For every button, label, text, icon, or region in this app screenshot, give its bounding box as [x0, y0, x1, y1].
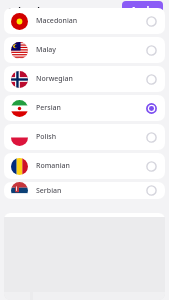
staticText: Select language [8, 4, 80, 16]
staticText: Romanian [36, 161, 146, 171]
button[interactable]: Polish [4, 124, 165, 150]
other: Serbian not selected [146, 185, 157, 196]
other: Macedonian not selected [146, 16, 157, 27]
button[interactable]: Serbian [4, 182, 165, 199]
staticText: Malay [36, 45, 146, 55]
other: Norwegian not selected [146, 74, 157, 85]
staticText: Polish [36, 132, 146, 142]
other: Malay not selected [146, 45, 157, 56]
other: Romanian not selected [146, 161, 157, 172]
button[interactable]: Persian [4, 95, 165, 121]
button[interactable]: Romanian [4, 153, 165, 179]
button[interactable]: Apply [122, 1, 163, 18]
button[interactable]: Malay [4, 37, 165, 63]
staticText: Serbian [36, 186, 146, 196]
staticText: Persian [36, 103, 146, 113]
button[interactable] [4, 213, 165, 300]
staticText: Apply [131, 4, 154, 15]
button[interactable]: Macedonian [4, 8, 165, 34]
other: Polish not selected [146, 132, 157, 143]
button[interactable]: Norwegian [4, 66, 165, 92]
staticText: Norwegian [36, 74, 146, 84]
other: Persian selected [146, 103, 157, 114]
staticText: Macedonian [36, 16, 146, 26]
